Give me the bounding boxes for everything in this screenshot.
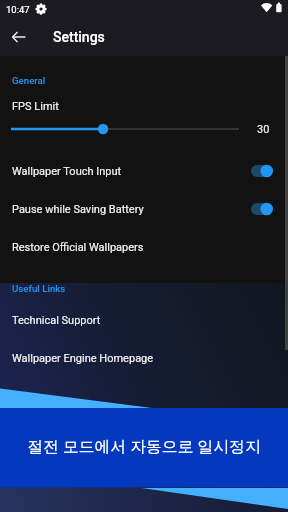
button[interactable]: FPS Limit — [0, 87, 288, 125]
staticText: 30 — [257, 123, 270, 136]
staticText: 10:47 — [6, 4, 30, 15]
staticText: Pause while Saving Battery — [12, 203, 144, 216]
staticText: Wallpaper Touch Input — [12, 165, 122, 178]
staticText: Restore Official Wallpapers — [12, 241, 144, 254]
staticText: FPS Limit — [12, 100, 59, 113]
staticText: Wallpaper Engine Homepage — [12, 352, 154, 365]
button[interactable]: Technical Support — [0, 301, 288, 339]
staticText: General — [12, 75, 46, 86]
button[interactable]: Pause while Saving Battery — [0, 190, 288, 228]
button[interactable]: Back — [0, 18, 38, 56]
button[interactable]: Wallpaper Touch Input — [0, 152, 288, 190]
button[interactable]: Restore Official Wallpapers — [0, 228, 288, 266]
staticText: Useful Links — [12, 283, 66, 294]
staticText: 절전 모드에서 자동으로 일시정지 — [27, 435, 261, 457]
button[interactable]: Wallpaper Engine Homepage — [0, 339, 288, 377]
staticText: Settings — [53, 29, 105, 45]
staticText: Technical Support — [12, 314, 101, 327]
